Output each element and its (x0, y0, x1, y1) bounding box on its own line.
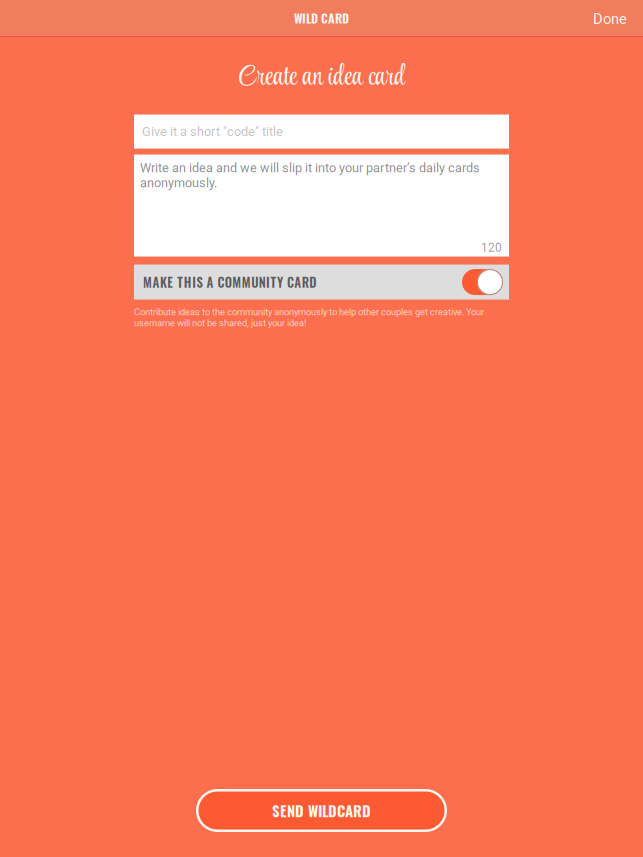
staticText: Contribute ideas to the community anonym… (134, 307, 484, 328)
button[interactable]: SEND WILDCARD (196, 789, 447, 832)
staticText: SEND WILDCARD (272, 800, 371, 821)
staticText: Give it a short "code" title (142, 124, 283, 139)
button[interactable]: MAKE THIS A COMMUNITY CARD (134, 265, 509, 300)
button[interactable]: Done (582, 0, 643, 37)
staticText: MAKE THIS A COMMUNITY CARD (143, 273, 316, 291)
staticText: WILD CARD (294, 9, 349, 27)
staticText: 120 (481, 240, 502, 255)
staticText: Done (593, 10, 627, 28)
staticText: Create an idea card (238, 56, 405, 100)
staticText: Write an idea and we will slip it into y… (140, 161, 480, 190)
